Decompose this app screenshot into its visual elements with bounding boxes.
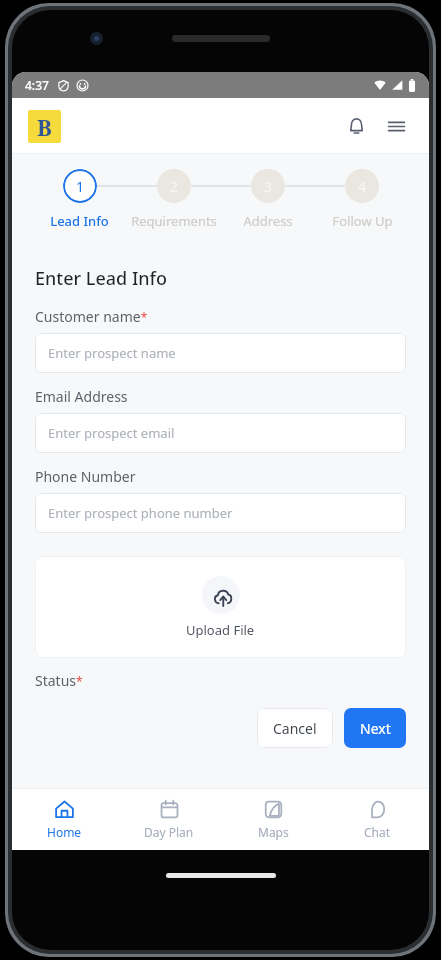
staticText: Phone Number xyxy=(35,467,136,486)
button[interactable]: Day Plan xyxy=(117,788,221,850)
staticText: Maps xyxy=(258,824,289,840)
button[interactable]: Enter prospect email xyxy=(35,413,406,453)
staticText: Enter prospect email xyxy=(48,424,175,442)
button[interactable]: Notifications xyxy=(339,109,373,143)
staticText: 4:37 xyxy=(25,77,49,93)
staticText: Cancel xyxy=(273,719,317,738)
staticText: 2 xyxy=(170,177,179,196)
staticText: Enter prospect phone number xyxy=(48,504,233,522)
button[interactable]: Enter prospect phone number xyxy=(35,493,406,533)
button[interactable]: Upload File xyxy=(35,556,406,658)
staticText: Email Address xyxy=(35,387,128,406)
button[interactable]: Home xyxy=(12,788,117,850)
button[interactable]: 1 xyxy=(32,168,127,230)
staticText: Status* xyxy=(35,671,83,690)
button[interactable]: Maps xyxy=(221,788,325,850)
button[interactable]: Next xyxy=(344,708,406,748)
staticText: Enter Lead Info xyxy=(35,266,167,291)
staticText: 3 xyxy=(264,177,273,196)
button[interactable]: 3 xyxy=(221,168,315,230)
staticText: Upload File xyxy=(186,621,255,639)
staticText: 4 xyxy=(358,177,367,196)
staticText: Customer name* xyxy=(35,307,148,326)
button[interactable]: 2 xyxy=(127,168,221,230)
button[interactable]: Cancel xyxy=(257,708,333,748)
staticText: Next xyxy=(360,719,391,738)
staticText: 1 xyxy=(76,177,85,196)
button[interactable]: Chat xyxy=(325,788,429,850)
staticText: Requirements xyxy=(131,212,217,230)
staticText: Day Plan xyxy=(144,824,194,840)
staticText: Chat xyxy=(364,824,391,840)
staticText: Home xyxy=(47,824,82,840)
staticText: Follow Up xyxy=(332,212,393,230)
button[interactable]: 4 xyxy=(315,168,409,230)
staticText: B xyxy=(37,112,52,142)
staticText: Address xyxy=(243,212,293,230)
staticText: Lead Info xyxy=(50,212,109,230)
staticText: Enter prospect name xyxy=(48,344,176,362)
button[interactable]: B xyxy=(28,110,61,143)
button[interactable]: Enter prospect name xyxy=(35,333,406,373)
button[interactable]: Menu xyxy=(379,109,413,143)
